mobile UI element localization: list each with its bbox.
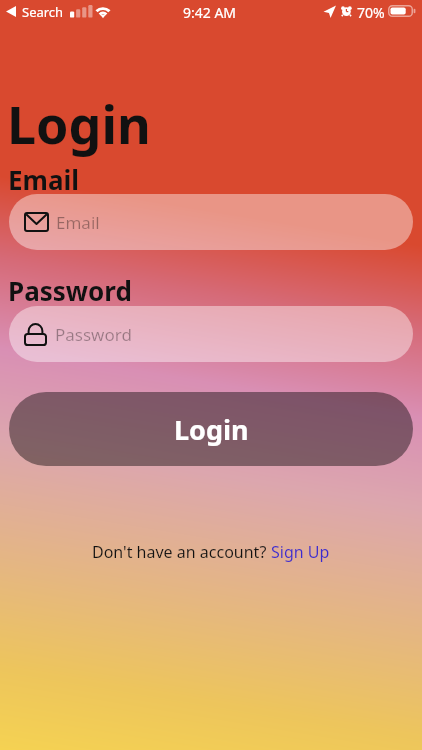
staticText: Password (8, 273, 132, 308)
staticText: Search (22, 3, 64, 21)
button[interactable]: Email (9, 194, 413, 250)
staticText: 70% (357, 3, 385, 22)
staticText: Password (55, 323, 132, 346)
staticText: Login (7, 88, 151, 159)
staticText: 9:42 AM (183, 3, 237, 22)
staticText: Email (8, 162, 80, 197)
button[interactable]: Login (9, 392, 413, 466)
button[interactable]: Password (9, 306, 413, 362)
staticText: Don't have an account? (92, 541, 271, 563)
staticText: Sign Up (271, 541, 330, 563)
staticText: Login (174, 411, 249, 448)
staticText: Email (56, 211, 100, 234)
button[interactable]: Sign Up (271, 541, 330, 563)
